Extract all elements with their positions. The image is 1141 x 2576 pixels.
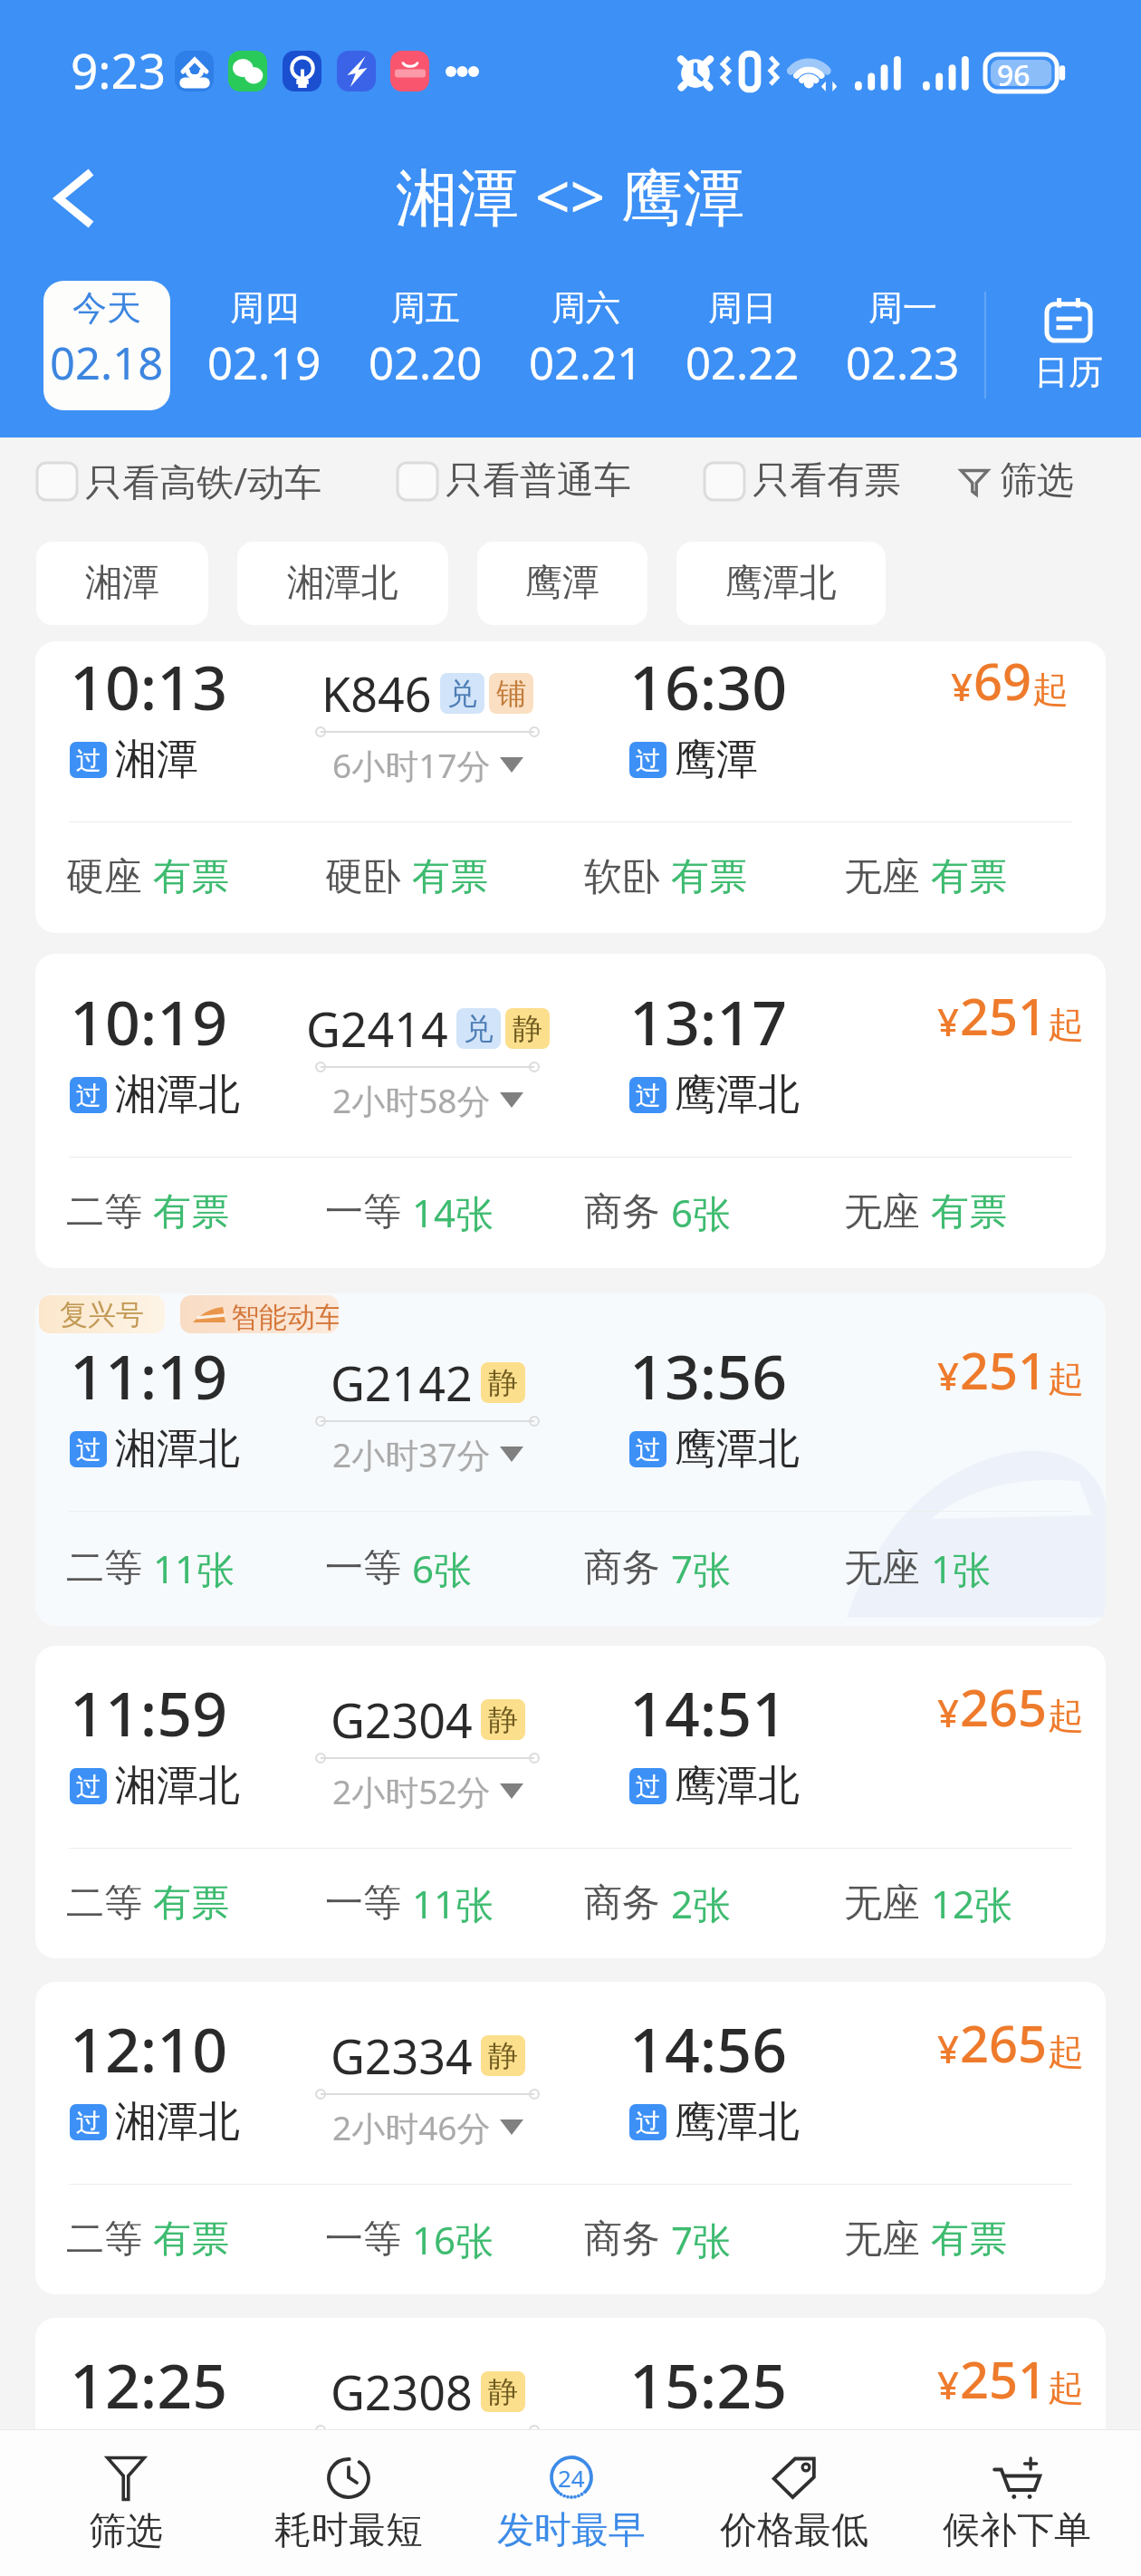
staticText: 6张 [412,1543,473,1594]
button[interactable]: 日历 [1001,281,1136,410]
staticText: 11张 [153,1543,235,1594]
staticText: 2小时52分 [332,1768,491,1814]
button[interactable]: 筛选 [960,450,1074,512]
button[interactable]: 湘潭 [36,542,208,625]
staticText: 10:19 [70,979,228,1063]
staticText: G2304 [331,1687,473,1752]
staticText: ¥ [937,1350,960,1401]
staticText: 周一 [868,286,937,330]
staticText: 无座 [844,1188,920,1236]
staticText: 一等 [325,2216,401,2264]
button[interactable]: 12:25 [35,2318,1106,2576]
staticText: 16张 [412,2214,494,2265]
staticText: 复兴号 [60,1297,144,1332]
staticText: 3小时00分 [332,2440,491,2486]
button[interactable]: 返回 [33,158,114,239]
staticText: 一等 [325,1188,401,1236]
staticText: ¥ [937,2359,960,2410]
staticText: 湘潭 [115,734,198,786]
button[interactable]: 周四 [187,274,341,404]
staticText: 02.23 [846,332,960,393]
staticText: 智能动车 [231,1300,339,1333]
staticText: 有票 [671,853,747,901]
staticText: 一等 [325,1544,401,1592]
staticText: 11:19 [70,1333,228,1418]
staticText: 湘潭北 [115,1423,240,1475]
button[interactable]: 11:59 [35,1646,1106,1958]
staticText: 有票 [931,853,1007,901]
staticText: 静 [488,1364,518,1402]
staticText: 02.18 [50,332,164,393]
button[interactable]: 10:19 [35,954,1106,1268]
button[interactable]: 鹰潭北 [676,542,886,625]
button[interactable]: 10:13 [35,641,1106,933]
button[interactable]: 周五 [349,274,503,404]
button[interactable]: 今天 [43,281,170,410]
staticText: 鹰潭北 [675,2096,800,2148]
staticText: 起 [1032,667,1069,712]
staticText: 商务 [584,1879,660,1927]
staticText: 硬座 [66,853,142,901]
staticText: 24 [558,2462,585,2494]
button[interactable]: 候补下单 [906,2430,1128,2576]
staticText: G2334 [331,2023,473,2088]
staticText: 商务 [584,1188,660,1236]
button[interactable]: 复兴号 [35,1293,1106,1626]
staticText: ¥ [951,660,973,712]
staticText: 有票 [153,1188,229,1236]
button[interactable]: 周一 [826,274,980,404]
staticText: ¥ [937,995,960,1047]
staticText: 16:30 [629,644,788,728]
staticText: 1张 [931,1543,992,1594]
button[interactable]: 耗时最短 [237,2430,460,2576]
button[interactable]: 鹰潭 [477,542,647,625]
staticText: 69 [973,646,1032,715]
staticText: 湘潭 <> 鹰潭 [396,153,745,237]
button[interactable]: 只看普通车 [398,450,631,512]
button[interactable]: 只看有票 [705,450,901,512]
staticText: 筛选 [89,2508,163,2555]
staticText: 二等 [66,2216,142,2264]
button[interactable]: 筛选 [14,2430,237,2576]
staticText: 7张 [671,1543,732,1594]
staticText: 起 [1048,1356,1069,1401]
staticText: 过 [76,1080,101,1111]
button[interactable]: 只看高铁/动车 [37,450,322,512]
staticText: 只看普通车 [446,457,631,505]
staticText: 有票 [153,853,229,901]
staticText: 12张 [931,1878,1013,1929]
staticText: 265 [960,1672,1048,1741]
staticText: 静 [488,2373,518,2411]
staticText: G2414 [306,996,448,1061]
staticText: ¥ [937,1687,960,1738]
button[interactable]: 24 [460,2430,683,2576]
staticText: 湘潭北 [115,2096,240,2148]
staticText: 过 [76,745,101,776]
button[interactable]: 湘潭北 [237,542,448,625]
button[interactable]: 价格最低 [683,2430,906,2576]
staticText: 10:13 [70,644,228,728]
staticText: 只看有票 [753,457,901,505]
staticText: 鹰潭北 [675,2432,800,2485]
button[interactable]: 周六 [509,274,663,404]
staticText: 鹰潭 [525,560,599,607]
staticText: 9:23 [71,37,167,102]
button[interactable]: 周日 [666,274,820,404]
staticText: 二等 [66,1544,142,1592]
staticText: 筛选 [1000,457,1074,505]
staticText: 今天 [72,286,141,330]
button[interactable]: 12:10 [35,1982,1106,2294]
staticText: 只看高铁/动车 [85,456,322,506]
staticText: 鹰潭北 [725,560,837,607]
staticText: 无座 [844,1879,920,1927]
staticText: 湘潭 [85,560,159,607]
staticText: 兑 [464,1010,494,1048]
staticText: 过 [636,1080,661,1111]
staticText: 商务 [584,1544,660,1592]
staticText: 周日 [708,286,777,330]
staticText: 静 [488,1701,518,1739]
